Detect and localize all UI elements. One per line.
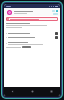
button[interactable] — [6, 35, 58, 39]
button[interactable] — [6, 31, 58, 35]
button[interactable] — [6, 41, 58, 45]
button[interactable] — [6, 17, 58, 21]
button[interactable]: Home — [29, 88, 36, 95]
button[interactable]: App logo — [6, 9, 12, 15]
button[interactable]: Back — [9, 88, 16, 95]
button[interactable]: Search — [52, 10, 55, 12]
button[interactable] — [22, 46, 31, 48]
button[interactable]: More options — [53, 13, 58, 15]
button[interactable]: Filter — [56, 10, 58, 12]
button[interactable]: Recents — [48, 88, 55, 95]
